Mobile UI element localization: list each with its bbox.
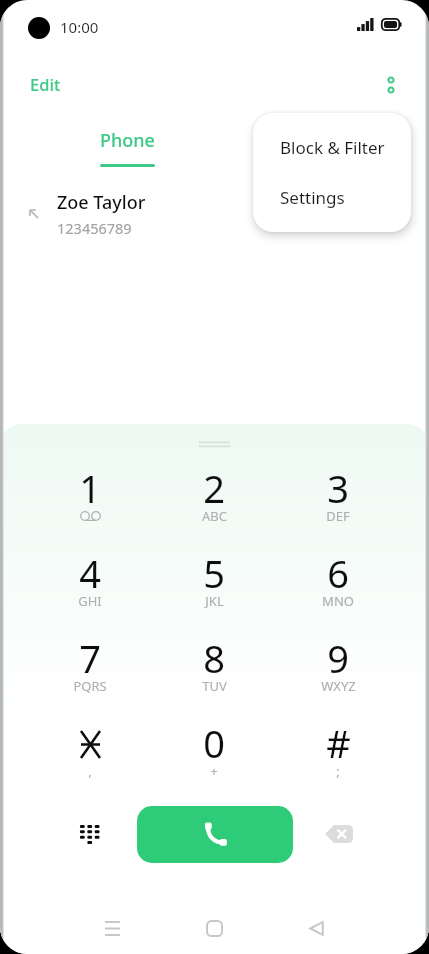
staticText: 9 — [327, 632, 349, 680]
button[interactable] — [168, 632, 260, 706]
staticText: 123456789 — [57, 218, 132, 238]
staticText: 5 — [203, 547, 225, 595]
button[interactable] — [292, 632, 384, 706]
staticText: TUV — [202, 677, 227, 695]
staticText: ABC — [202, 507, 227, 525]
staticText: 7 — [79, 632, 101, 680]
button[interactable]: Home — [194, 906, 234, 950]
button[interactable] — [292, 717, 384, 791]
button[interactable] — [44, 632, 136, 706]
staticText: 4 — [79, 547, 101, 595]
staticText: 10:00 — [60, 17, 99, 37]
button[interactable] — [292, 462, 384, 536]
button[interactable]: Phone — [82, 120, 172, 172]
staticText: , — [88, 762, 92, 780]
staticText: Block & Filter — [280, 136, 385, 159]
button[interactable]: Back — [296, 906, 336, 950]
button[interactable] — [292, 547, 384, 621]
button[interactable]: Recents — [92, 906, 132, 950]
staticText: Zoe Taylor — [57, 190, 146, 215]
staticText: MNO — [322, 592, 354, 610]
button[interactable]: Zoe Taylor — [0, 182, 429, 246]
button[interactable] — [44, 462, 136, 536]
button[interactable] — [168, 717, 260, 791]
staticText: 0 — [203, 717, 225, 765]
button[interactable] — [168, 462, 260, 536]
staticText: ; — [336, 762, 340, 780]
staticText: WXYZ — [321, 677, 356, 695]
button[interactable]: Backspace — [313, 812, 365, 856]
staticText: Phone — [100, 128, 155, 153]
staticText: DEF — [326, 507, 350, 525]
staticText: Edit — [30, 73, 61, 95]
button[interactable] — [44, 717, 136, 791]
button[interactable]: Edit — [18, 65, 73, 103]
staticText: 1 — [79, 462, 101, 510]
button[interactable]: Block & Filter — [253, 119, 411, 175]
staticText: 2 — [203, 462, 225, 510]
button[interactable]: Settings — [253, 169, 411, 225]
button[interactable]: More options — [370, 64, 411, 105]
button[interactable]: Keypad — [62, 812, 118, 856]
staticText: GHI — [78, 592, 102, 610]
staticText: 8 — [203, 632, 225, 680]
button[interactable]: Call — [137, 806, 293, 863]
staticText: Settings — [280, 186, 345, 209]
button[interactable] — [168, 547, 260, 621]
staticText: 6 — [327, 547, 349, 595]
staticText: 3 — [327, 462, 349, 510]
staticText: # — [326, 717, 351, 765]
staticText: JKL — [205, 592, 224, 610]
staticText: + — [210, 762, 218, 780]
button[interactable] — [44, 547, 136, 621]
staticText: PQRS — [73, 677, 107, 695]
